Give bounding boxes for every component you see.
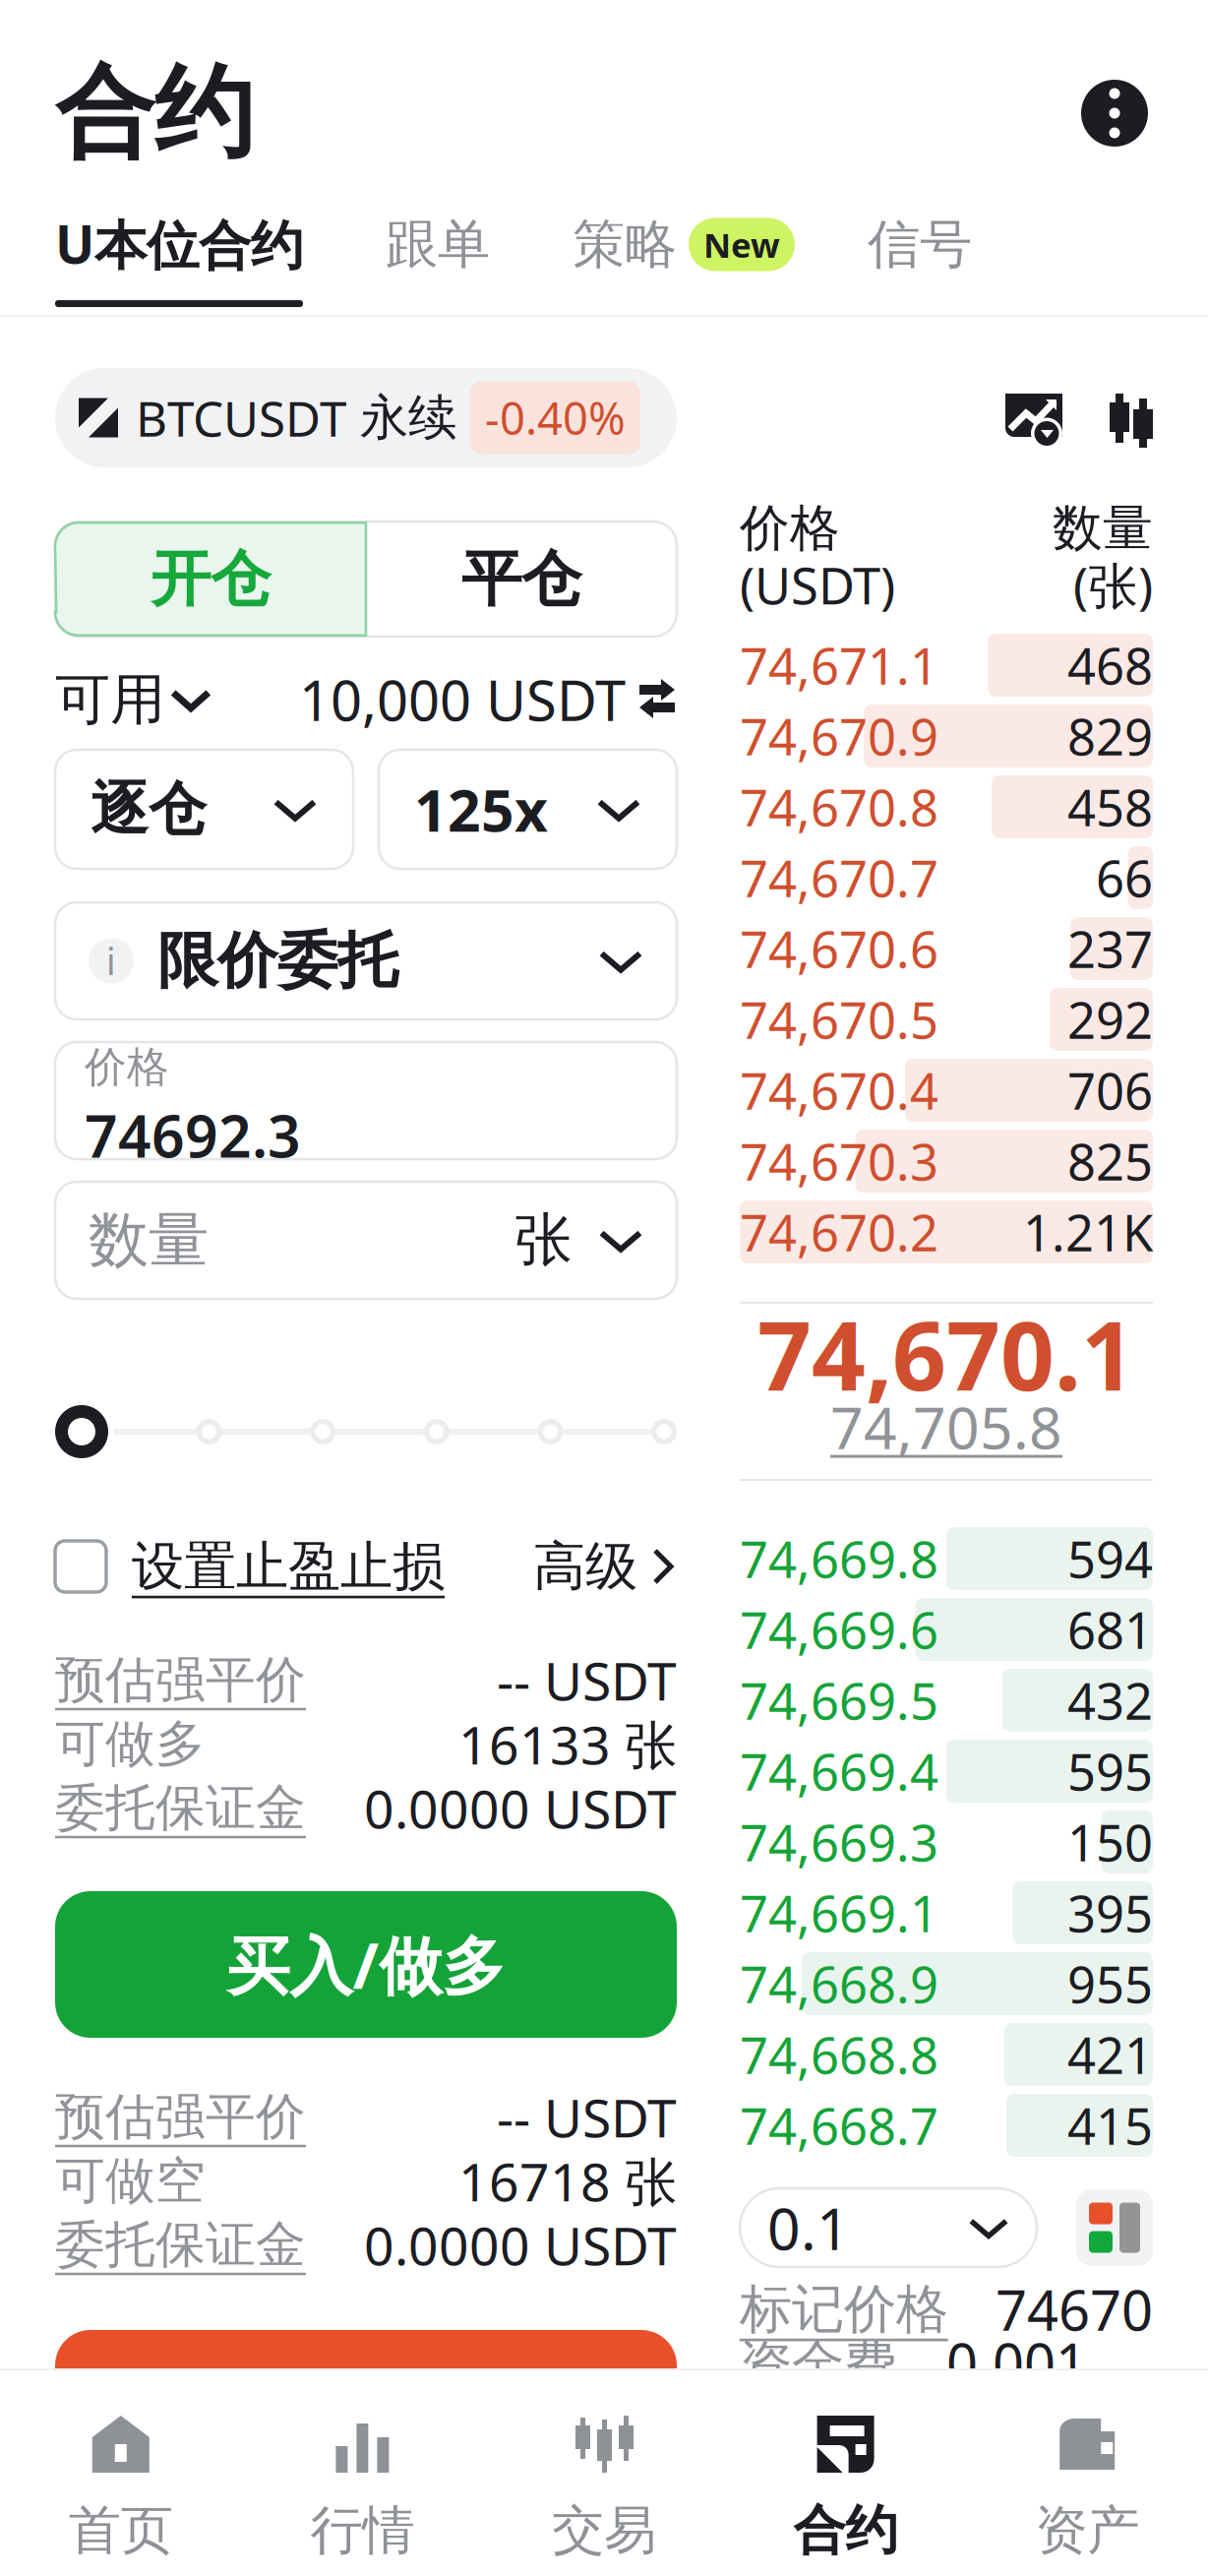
button[interactable]: 首页 [0, 2370, 242, 2576]
staticText: 16133 张 [458, 1709, 677, 1779]
staticText: 74,669.6 [740, 1596, 938, 1663]
staticText: 0.0015% [946, 2326, 1153, 2399]
button[interactable]: 合约 [725, 2370, 966, 2576]
staticText: 交易 [552, 2498, 656, 2563]
button[interactable]: 可用 [55, 666, 212, 733]
staticText: 预估强平价 [55, 2086, 306, 2148]
staticText: 468 [1067, 632, 1153, 698]
button[interactable]: Chart [1005, 394, 1062, 448]
staticText: 74,669.3 [740, 1809, 938, 1875]
staticText: i [106, 936, 116, 985]
staticText: 150 [1067, 1809, 1153, 1875]
button[interactable]: More options [1076, 66, 1153, 160]
staticText: 预估强平价 [55, 1650, 306, 1711]
staticText: 74692.3 [85, 1097, 301, 1174]
staticText: 125x [414, 771, 548, 848]
staticText: 永续 [360, 388, 456, 448]
button[interactable]: 0.1 [740, 2188, 1037, 2267]
staticText: 74,670.1 [757, 1291, 1135, 1417]
button[interactable]: 行情 [242, 2370, 483, 2576]
staticText: 74,668.9 [740, 1951, 938, 2017]
staticText: 706 [1067, 1057, 1153, 1123]
button[interactable]: 资产 [966, 2370, 1208, 2576]
button[interactable]: Order book layout [1076, 2188, 1153, 2267]
staticText: New [703, 222, 780, 267]
staticText: 策略 [573, 212, 677, 277]
staticText: 可用 [55, 666, 165, 733]
staticText: 74670 [996, 2273, 1153, 2346]
button[interactable]: 买入/做多 [55, 1891, 677, 2038]
staticText: 委托保证金 [55, 1777, 306, 1839]
button[interactable]: U本位合约 [55, 209, 303, 307]
staticText: -- USDT [497, 1645, 677, 1715]
staticText: 74,670.6 [740, 915, 938, 982]
staticText: 逐仓 [91, 774, 207, 845]
staticText: U本位合约 [55, 209, 303, 279]
staticText: 74,670.8 [740, 774, 938, 840]
staticText: 432 [1067, 1667, 1153, 1733]
staticText: 74,669.5 [740, 1667, 938, 1733]
button[interactable]: 74,705.8 [830, 1402, 1062, 1451]
staticText: 数量 [89, 1203, 209, 1277]
staticText: 458 [1067, 774, 1153, 840]
staticText: 829 [1067, 703, 1153, 769]
staticText: (USDT) [740, 552, 895, 618]
staticText: 74,670.9 [740, 703, 938, 769]
staticText: 74,705.8 [830, 1388, 1062, 1465]
staticText: 74,671.1 [740, 632, 938, 698]
staticText: 资金费率 [740, 2328, 946, 2398]
staticText: 可做空 [55, 2150, 206, 2212]
button[interactable]: 信号 [868, 212, 972, 303]
button[interactable]: 高级 [533, 1534, 677, 1599]
staticText: 价格 [85, 1041, 169, 1093]
button[interactable]: 逐仓 [55, 750, 353, 869]
staticText: 0.0000 USDT [364, 2210, 677, 2280]
staticText: 681 [1067, 1596, 1153, 1663]
staticText: 张 [514, 1205, 573, 1276]
staticText: 设置止盈止损 [132, 1534, 445, 1599]
staticText: 买入/做多 [227, 1923, 505, 2006]
button[interactable]: Order book depth [1110, 394, 1153, 448]
staticText: 平仓 [461, 542, 581, 616]
staticText: 16718 张 [458, 2146, 677, 2216]
staticText: 595 [1067, 1738, 1153, 1804]
staticText: 74,670.3 [740, 1128, 938, 1194]
staticText: 292 [1067, 986, 1153, 1053]
staticText: 10,000 USDT [299, 663, 626, 736]
button[interactable]: 设置止盈止损 [55, 1534, 445, 1599]
staticText: 跟单 [386, 212, 490, 277]
button[interactable]: 125x [379, 750, 677, 869]
staticText: 421 [1067, 2021, 1153, 2088]
staticText: 0.0000 USDT [364, 1773, 677, 1843]
staticText: 开仓 [151, 542, 271, 616]
staticText: 0.1 [767, 2189, 850, 2266]
staticText: 信号 [868, 212, 972, 277]
staticText: -0.40% [485, 388, 626, 447]
staticText: 高级 [533, 1534, 637, 1599]
button[interactable]: 开仓 [55, 521, 366, 637]
staticText: 237 [1067, 915, 1153, 982]
button[interactable]: 策略 [573, 212, 795, 303]
button[interactable]: BTCUSDT [55, 368, 677, 467]
button[interactable]: 平仓 [366, 521, 677, 637]
button[interactable]: i [55, 902, 677, 1019]
staticText: 可做多 [55, 1713, 206, 1775]
staticText: 74,670.5 [740, 986, 938, 1053]
button[interactable]: 跟单 [386, 212, 490, 303]
staticText: 标记价格 [740, 2277, 948, 2342]
staticText: 数量 [1053, 498, 1153, 559]
staticText: 行情 [310, 2498, 415, 2563]
staticText: 74,670.7 [740, 845, 938, 911]
staticText: 限价委托 [157, 924, 397, 998]
button[interactable]: 10,000 USDT [299, 663, 677, 736]
staticText: 74,669.8 [740, 1526, 938, 1592]
staticText: 合约 [793, 2498, 898, 2563]
button[interactable]: 交易 [483, 2370, 725, 2576]
staticText: (张) [1073, 552, 1153, 618]
staticText: 1.21K [1023, 1199, 1153, 1265]
staticText: 首页 [69, 2498, 173, 2563]
button[interactable]: 卖出/做空 [55, 2330, 677, 2477]
staticText: 74,668.8 [740, 2021, 938, 2088]
staticText: 825 [1067, 1128, 1153, 1194]
staticText: -- USDT [497, 2082, 677, 2152]
